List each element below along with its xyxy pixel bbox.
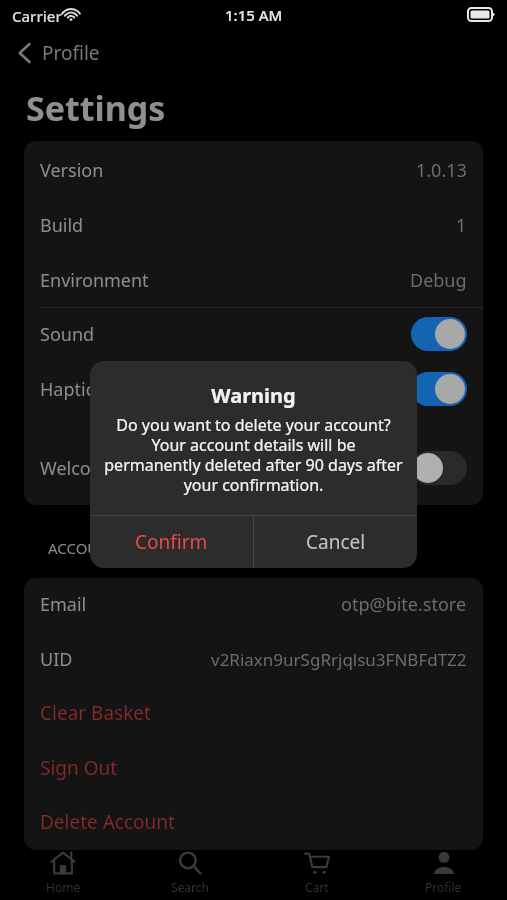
staticText: Clear Basket: [40, 700, 151, 726]
button[interactable]: Environment: [24, 253, 483, 307]
staticText: Welcome: [40, 456, 118, 481]
staticText: Do you want to delete your account? Your…: [104, 414, 403, 495]
button[interactable]: Search: [126, 842, 253, 900]
button[interactable]: Sign Out: [24, 741, 483, 795]
staticText: v2Riaxn9urSgRrjqlsu3FNBFdTZ2: [211, 648, 467, 671]
staticText: Profile: [425, 879, 462, 895]
staticText: Warning: [211, 382, 296, 409]
staticText: Delete Account: [40, 809, 175, 835]
staticText: Version: [40, 158, 104, 183]
button[interactable]: UID: [24, 632, 483, 686]
button[interactable]: Build: [24, 198, 483, 252]
staticText: otp@bite.store: [341, 592, 467, 617]
button[interactable]: Cancel: [254, 516, 417, 568]
button[interactable]: Email: [24, 577, 483, 631]
button[interactable]: Profile: [12, 37, 106, 69]
staticText: 1: [456, 213, 467, 238]
staticText: Haptics: [40, 377, 103, 402]
staticText: Search: [171, 879, 209, 895]
staticText: Build: [40, 213, 84, 238]
staticText: ACCOUNT: [48, 538, 119, 558]
button[interactable]: Sound: [24, 307, 483, 361]
other: Haptics: [411, 372, 467, 406]
staticText: Confirm: [135, 529, 208, 555]
button[interactable]: Version: [24, 143, 483, 197]
button[interactable]: Confirm: [90, 516, 253, 568]
staticText: 1.0.13: [416, 158, 467, 183]
staticText: Home: [46, 879, 81, 895]
staticText: Email: [40, 592, 87, 617]
button[interactable]: Home: [0, 842, 126, 900]
button[interactable]: Welcome: [24, 441, 483, 495]
staticText: Carrier: [12, 6, 62, 26]
staticText: Profile: [42, 40, 100, 66]
staticText: Sound: [40, 322, 95, 347]
button[interactable]: Delete Account: [24, 795, 483, 849]
staticText: Cart: [305, 879, 329, 895]
staticText: Environment: [40, 268, 149, 293]
staticText: Cancel: [306, 529, 366, 555]
staticText: 1:15 AM: [225, 5, 283, 25]
button[interactable]: Haptics: [24, 362, 483, 416]
button[interactable]: Profile: [380, 842, 507, 900]
button[interactable]: Clear Basket: [24, 686, 483, 740]
button[interactable]: Cart: [253, 842, 380, 900]
staticText: Debug: [410, 268, 467, 293]
other: Sound: [411, 317, 467, 351]
staticText: Sign Out: [40, 755, 118, 781]
other: Welcome: [411, 451, 467, 485]
staticText: UID: [40, 647, 73, 672]
staticText: Settings: [26, 85, 166, 131]
